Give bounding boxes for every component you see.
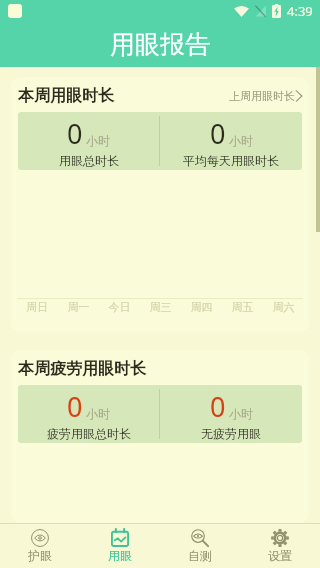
button[interactable]: 用眼: [80, 524, 160, 568]
staticText: 0: [210, 388, 226, 425]
button[interactable]: 上周用眼时长: [229, 89, 303, 103]
staticText: 0: [210, 115, 226, 152]
staticText: 周五: [222, 300, 263, 314]
staticText: 周四: [181, 300, 222, 314]
staticText: 0: [67, 388, 83, 425]
staticText: 周日: [16, 300, 58, 314]
staticText: 今日: [99, 300, 140, 314]
staticText: 用眼: [108, 548, 132, 563]
staticText: 设置: [268, 548, 292, 563]
staticText: 疲劳用眼总时长: [47, 426, 131, 441]
staticText: 4:39: [287, 2, 313, 20]
staticText: 自测: [188, 548, 212, 563]
staticText: 0: [67, 115, 83, 152]
staticText: 周六: [263, 300, 304, 314]
staticText: 用眼报告: [110, 29, 210, 60]
staticText: 小时: [86, 133, 110, 148]
staticText: 小时: [86, 406, 110, 421]
staticText: 平均每天用眼时长: [183, 153, 279, 168]
staticText: 周三: [140, 300, 181, 314]
button[interactable]: 设置: [240, 524, 320, 568]
button[interactable]: 自测: [160, 524, 240, 568]
staticText: 小时: [229, 406, 253, 421]
staticText: 本周疲劳用眼时长: [18, 359, 146, 379]
staticText: 用眼总时长: [59, 153, 119, 168]
staticText: 无疲劳用眼: [201, 426, 261, 441]
staticText: 护眼: [28, 548, 52, 563]
button[interactable]: 护眼: [0, 524, 80, 568]
staticText: 周一: [58, 300, 99, 314]
staticText: 上周用眼时长: [229, 89, 295, 103]
staticText: 本周用眼时长: [18, 86, 114, 106]
staticText: 小时: [229, 133, 253, 148]
